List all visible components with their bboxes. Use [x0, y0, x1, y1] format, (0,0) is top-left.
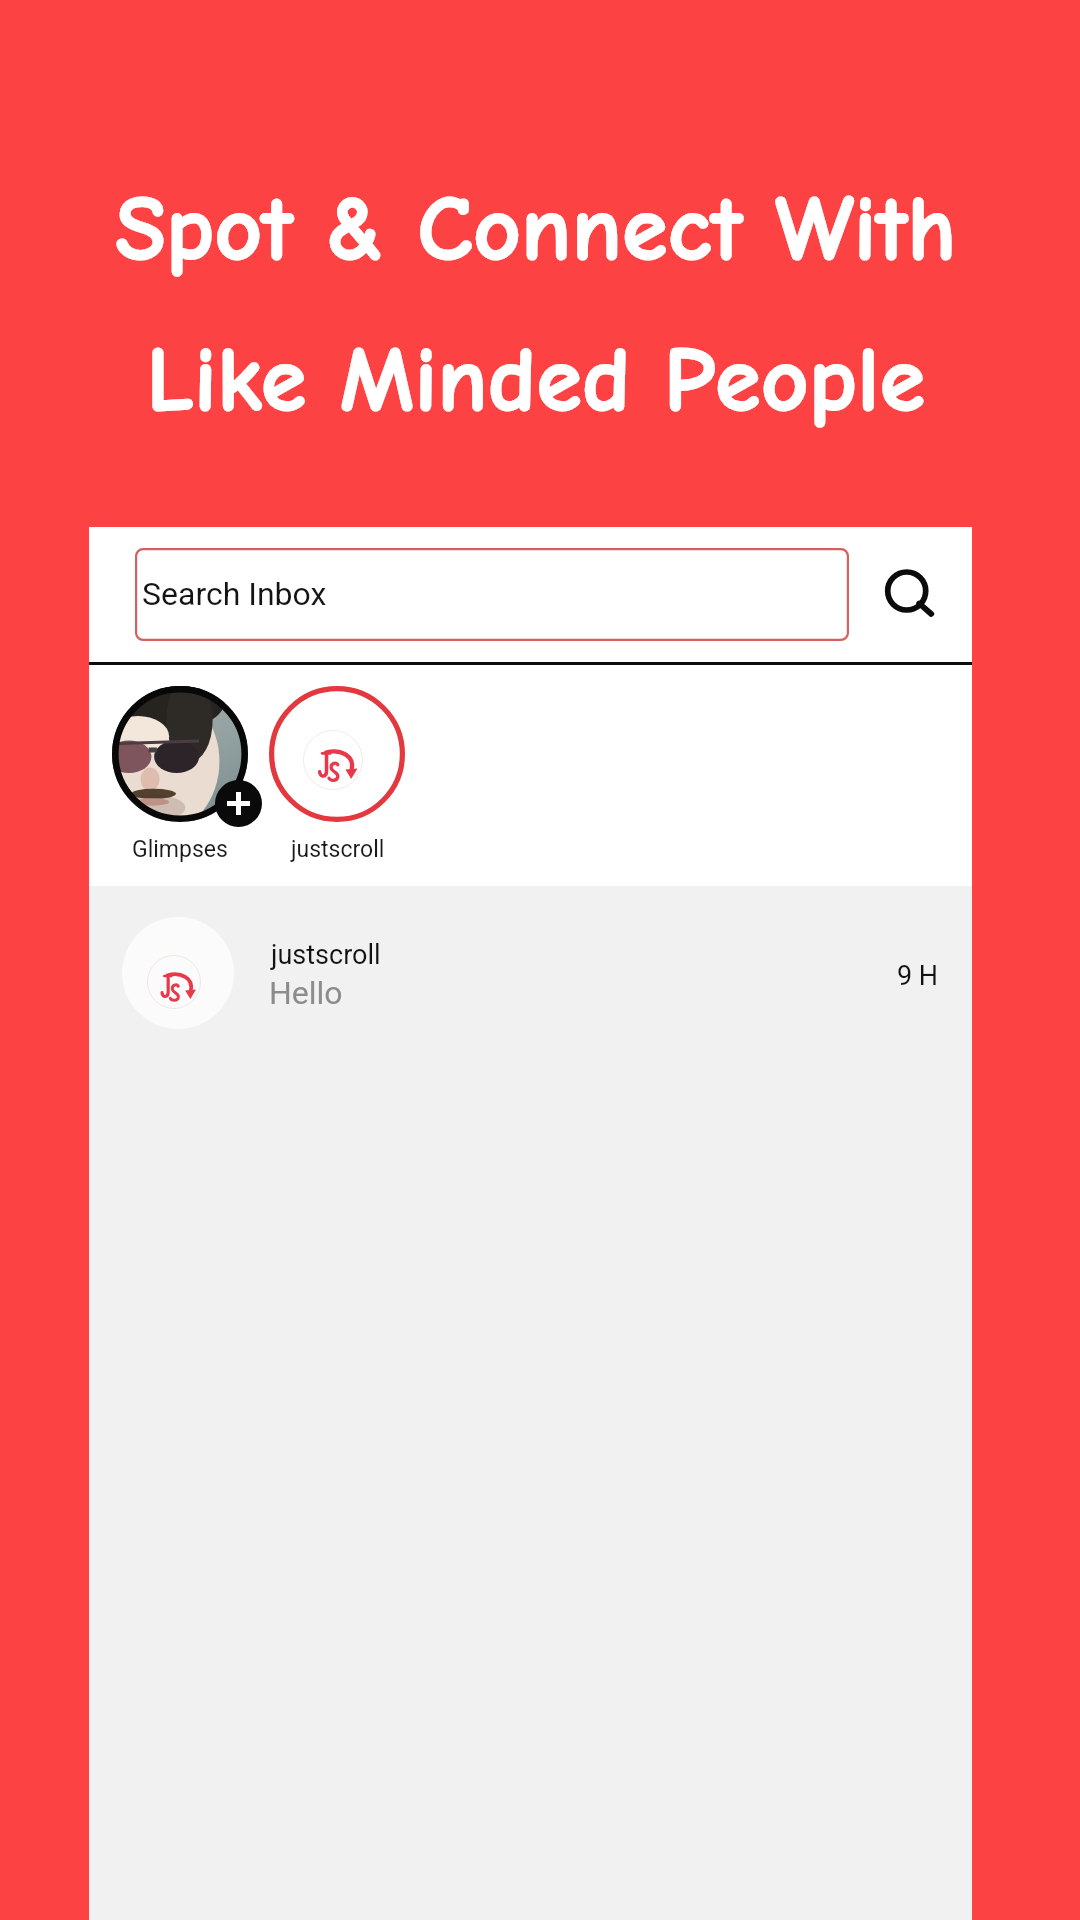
staticText: justscroll: [291, 836, 385, 863]
staticText: 9 H: [897, 960, 939, 992]
button[interactable]: [112, 686, 248, 822]
staticText: Spot & Connect With Like Minded People: [0, 176, 1076, 433]
staticText: Spot & Connect With Like Minded People: [0, 176, 1076, 433]
staticText: Search Inbox: [142, 575, 327, 613]
staticText: Glimpses: [132, 836, 228, 863]
button[interactable]: [269, 686, 405, 822]
button[interactable]: Search: [857, 541, 957, 641]
button[interactable]: Add story: [215, 780, 262, 827]
button[interactable]: justscroll: [89, 886, 972, 1014]
staticText: Hello: [269, 974, 343, 1012]
staticText: justscroll: [271, 939, 381, 971]
button[interactable]: Search Inbox: [135, 548, 849, 641]
